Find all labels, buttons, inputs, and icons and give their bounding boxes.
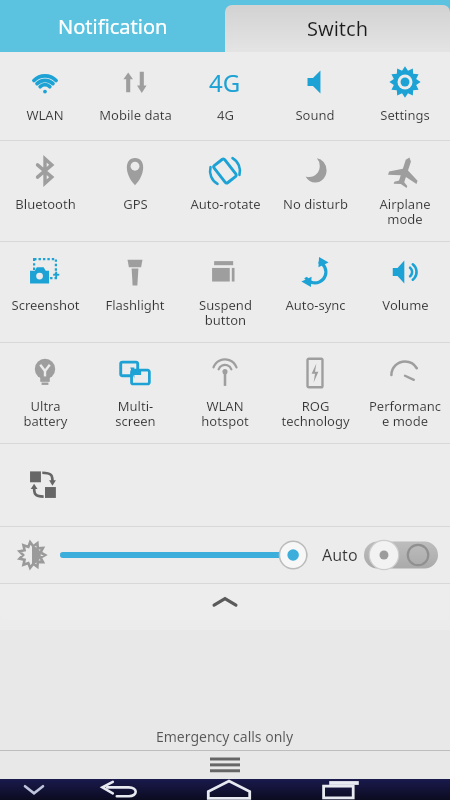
staticText: Airplane mode <box>379 195 431 228</box>
staticText: GPS <box>123 195 148 213</box>
staticText: Flashlight <box>105 296 165 314</box>
button[interactable]: Suspend button <box>180 242 270 329</box>
button[interactable]: Hide <box>0 779 68 800</box>
button[interactable]: ROG technology <box>270 343 360 430</box>
staticText: Auto <box>322 544 358 566</box>
staticText: ROG technology <box>281 397 350 430</box>
button[interactable]: Screenshot <box>0 242 90 314</box>
button[interactable]: Notification <box>0 0 225 52</box>
staticText: 4G <box>217 106 234 124</box>
button[interactable]: Performanc e mode <box>360 343 450 430</box>
staticText: 4G <box>209 66 241 99</box>
staticText: Auto-sync <box>285 296 346 314</box>
staticText: Ultra battery <box>23 397 68 430</box>
button[interactable]: WLAN <box>0 52 90 124</box>
staticText: WLAN hotspot <box>201 397 249 430</box>
staticText: Sound <box>295 106 335 124</box>
button[interactable]: Brightness slider <box>60 535 308 575</box>
button[interactable]: Multi- screen <box>90 343 180 430</box>
button[interactable]: Back <box>68 779 172 800</box>
button[interactable]: Home <box>172 779 285 800</box>
button[interactable]: Switch <box>225 5 450 52</box>
button[interactable]: Bluetooth <box>0 141 90 213</box>
staticText: Settings <box>380 106 430 124</box>
button[interactable]: Ultra battery <box>0 343 90 430</box>
button[interactable]: Drag handle <box>0 751 450 779</box>
button[interactable]: Switch layout <box>16 456 74 514</box>
button[interactable]: Volume <box>360 242 450 314</box>
button[interactable]: 4G <box>180 52 270 124</box>
button[interactable]: Auto brightness toggle <box>364 539 438 571</box>
button[interactable]: Collapse <box>0 584 450 620</box>
staticText: Auto-rotate <box>190 195 261 213</box>
button[interactable]: Recent apps <box>285 779 398 800</box>
staticText: Performanc e mode <box>369 397 441 430</box>
button[interactable]: GPS <box>90 141 180 213</box>
staticText: WLAN <box>26 106 64 124</box>
button[interactable]: No disturb <box>270 141 360 213</box>
staticText: Screenshot <box>11 296 80 314</box>
button[interactable]: Auto-sync <box>270 242 360 314</box>
staticText: Notification <box>58 13 168 40</box>
button[interactable]: Brightness <box>12 535 52 575</box>
staticText: No disturb <box>283 195 348 213</box>
staticText: Volume <box>382 296 429 314</box>
staticText: Emergency calls only <box>156 727 294 746</box>
button[interactable]: Flashlight <box>90 242 180 314</box>
button[interactable]: Auto-rotate <box>180 141 270 213</box>
staticText: Mobile data <box>99 106 172 124</box>
staticText: Suspend button <box>199 296 252 329</box>
button[interactable]: Airplane mode <box>360 141 450 228</box>
staticText: Bluetooth <box>15 195 76 213</box>
button[interactable]: Settings <box>360 52 450 124</box>
button[interactable]: WLAN hotspot <box>180 343 270 430</box>
staticText: Multi- screen <box>115 397 156 430</box>
button[interactable]: Mobile data <box>90 52 180 124</box>
staticText: Switch <box>307 15 369 42</box>
button[interactable]: Sound <box>270 52 360 124</box>
